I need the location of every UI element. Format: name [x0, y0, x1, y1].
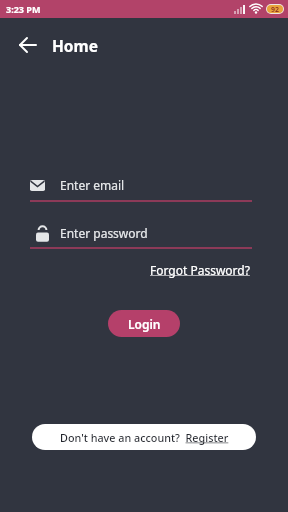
button[interactable]: [14, 31, 42, 59]
staticText: Enter password: [60, 225, 148, 241]
staticText: Home: [52, 35, 98, 56]
staticText: Don't have an account? Register: [60, 430, 229, 445]
button[interactable]: Forgot Password?: [150, 262, 250, 278]
staticText: Login: [128, 316, 161, 332]
staticText: Enter email: [60, 177, 125, 193]
button[interactable]: Don't have an account? Register: [32, 424, 256, 450]
staticText: 3:23 PM: [6, 3, 41, 15]
button[interactable]: Login: [108, 310, 180, 337]
staticText: 92: [271, 5, 280, 13]
